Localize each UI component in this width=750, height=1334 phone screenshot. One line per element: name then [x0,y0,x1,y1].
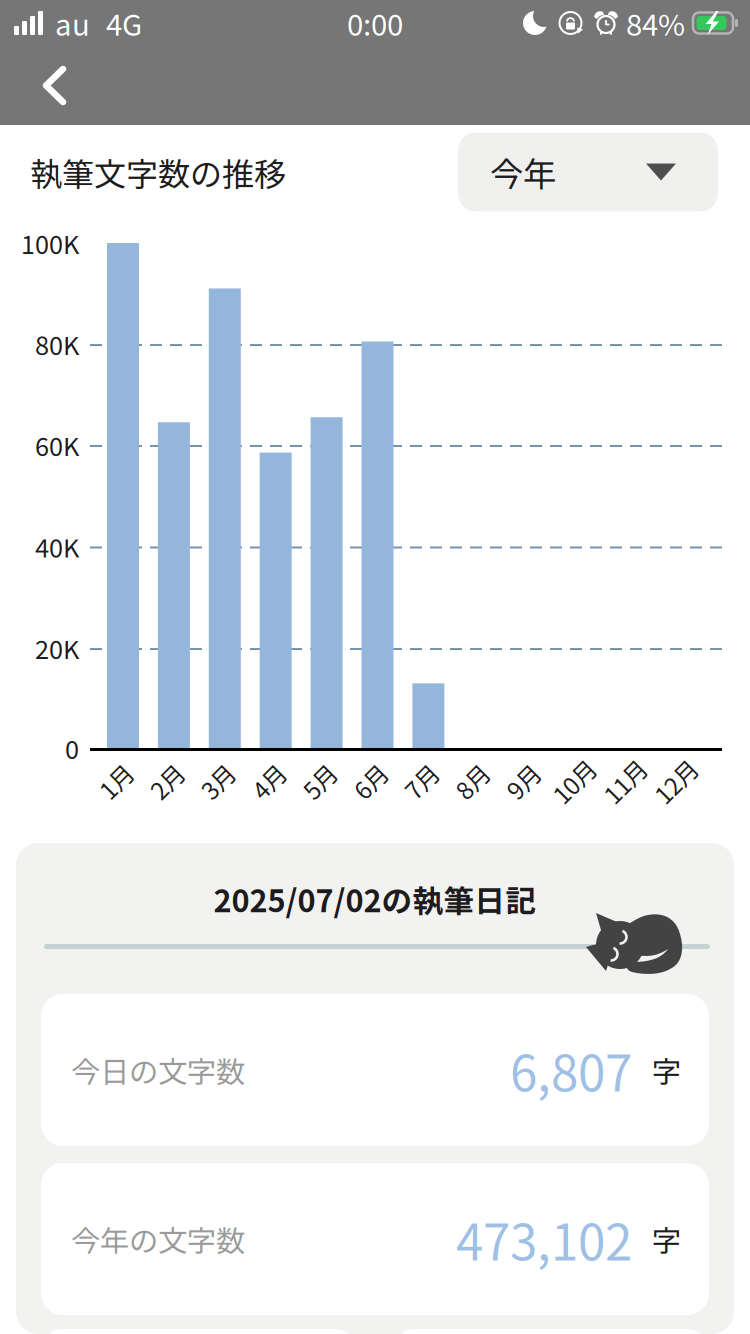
button[interactable]: 今日の文字数 [41,994,709,1146]
staticText: 5月 [301,764,338,798]
staticText: 80K [35,326,79,362]
staticText: 12月 [651,764,701,798]
staticText: 7月 [403,764,440,798]
staticText: 9月 [505,764,542,798]
button[interactable]: Back [0,47,93,124]
staticText: 0 [65,730,79,766]
staticText: 4G [106,2,142,44]
staticText: au [55,2,90,44]
staticText: 6,807 [510,1034,632,1106]
staticText: 100K [21,225,79,261]
button[interactable]: 今年の文字数 [41,1163,709,1315]
button[interactable]: Right stat card [393,1329,709,1334]
staticText: 今年 [490,148,556,196]
staticText: 今日の文字数 [71,1049,245,1091]
button[interactable]: Left stat card [41,1329,357,1334]
staticText: 20K [35,630,79,666]
staticText: 2月 [148,764,185,798]
button[interactable]: 今年 [458,132,718,211]
staticText: 1月 [97,764,134,798]
staticText: 84% [626,2,685,44]
staticText: 字 [652,1049,681,1091]
staticText: 10月 [549,764,599,798]
staticText: 3月 [199,764,236,798]
staticText: 2025/07/02の執筆日記 [213,877,536,921]
staticText: 今年の文字数 [71,1218,245,1260]
staticText: 473,102 [456,1203,632,1275]
staticText: 4月 [250,764,287,798]
staticText: 0:00 [347,2,403,44]
staticText: 字 [652,1218,681,1260]
staticText: 執筆文字数の推移 [30,149,286,195]
staticText: 40K [35,528,79,565]
staticText: 8月 [454,764,491,798]
staticText: 11月 [600,764,650,798]
staticText: 6月 [352,764,389,798]
staticText: 60K [35,427,79,463]
